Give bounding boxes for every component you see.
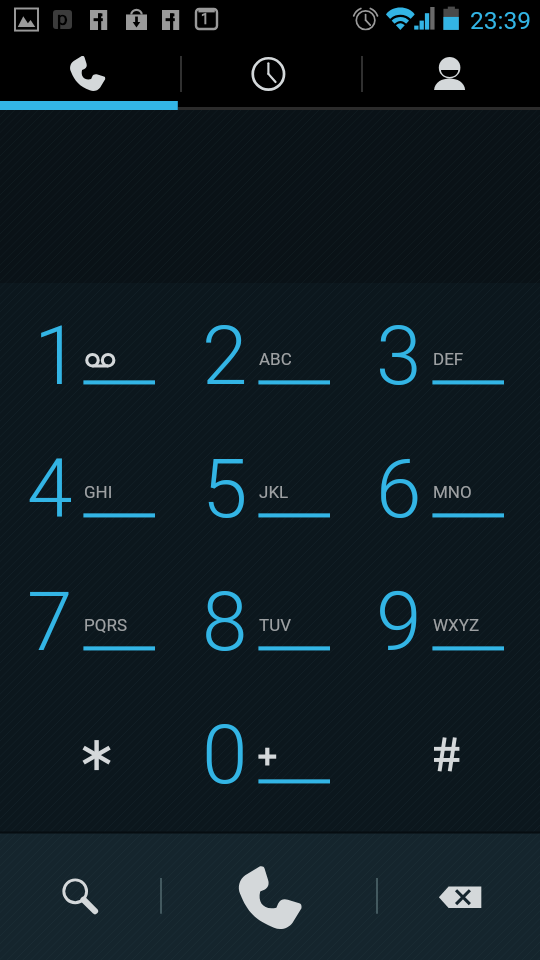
button[interactable]: Key 4 (8, 425, 182, 558)
button[interactable]: Key 5 (183, 425, 357, 558)
staticText: 1 (34, 308, 80, 404)
button[interactable]: Call history (181, 0, 362, 101)
button[interactable]: Key * (8, 691, 182, 824)
button[interactable]: Key 0 (183, 691, 357, 824)
staticText: 5 (202, 441, 248, 537)
staticText: GHI (84, 482, 113, 502)
staticText: ABC (259, 349, 292, 369)
staticText: 1 (201, 11, 209, 27)
button[interactable]: Key 1 (8, 292, 182, 425)
staticText: WXYZ (433, 615, 480, 635)
staticText: 7 (27, 574, 73, 670)
staticText: 8 (202, 574, 248, 670)
staticText: 3 (376, 308, 422, 404)
staticText: 4 (27, 441, 73, 537)
staticText: 23:39 (470, 6, 532, 35)
button[interactable]: Search (0, 834, 161, 960)
staticText: TUV (259, 615, 291, 635)
button[interactable]: Key 9 (357, 558, 531, 691)
button[interactable]: Backspace (377, 834, 540, 960)
staticText: PQRS (84, 615, 127, 635)
staticText: 9 (376, 574, 422, 670)
staticText: 2 (202, 308, 248, 404)
staticText: p (57, 7, 68, 29)
button[interactable]: Contacts (362, 0, 540, 101)
staticText: JKL (259, 482, 289, 502)
button[interactable]: Key 6 (357, 425, 531, 558)
staticText: MNO (433, 482, 472, 502)
button[interactable]: Key 3 (357, 292, 531, 425)
button[interactable]: Key 8 (183, 558, 357, 691)
button[interactable]: Keypad (0, 0, 181, 101)
staticText: 0 (202, 707, 248, 803)
button[interactable]: Key 2 (183, 292, 357, 425)
button[interactable]: Key # (357, 691, 531, 824)
button[interactable]: Call (161, 834, 377, 960)
staticText: 6 (376, 441, 422, 537)
staticText: DEF (433, 349, 464, 369)
button[interactable]: Key 7 (8, 558, 182, 691)
